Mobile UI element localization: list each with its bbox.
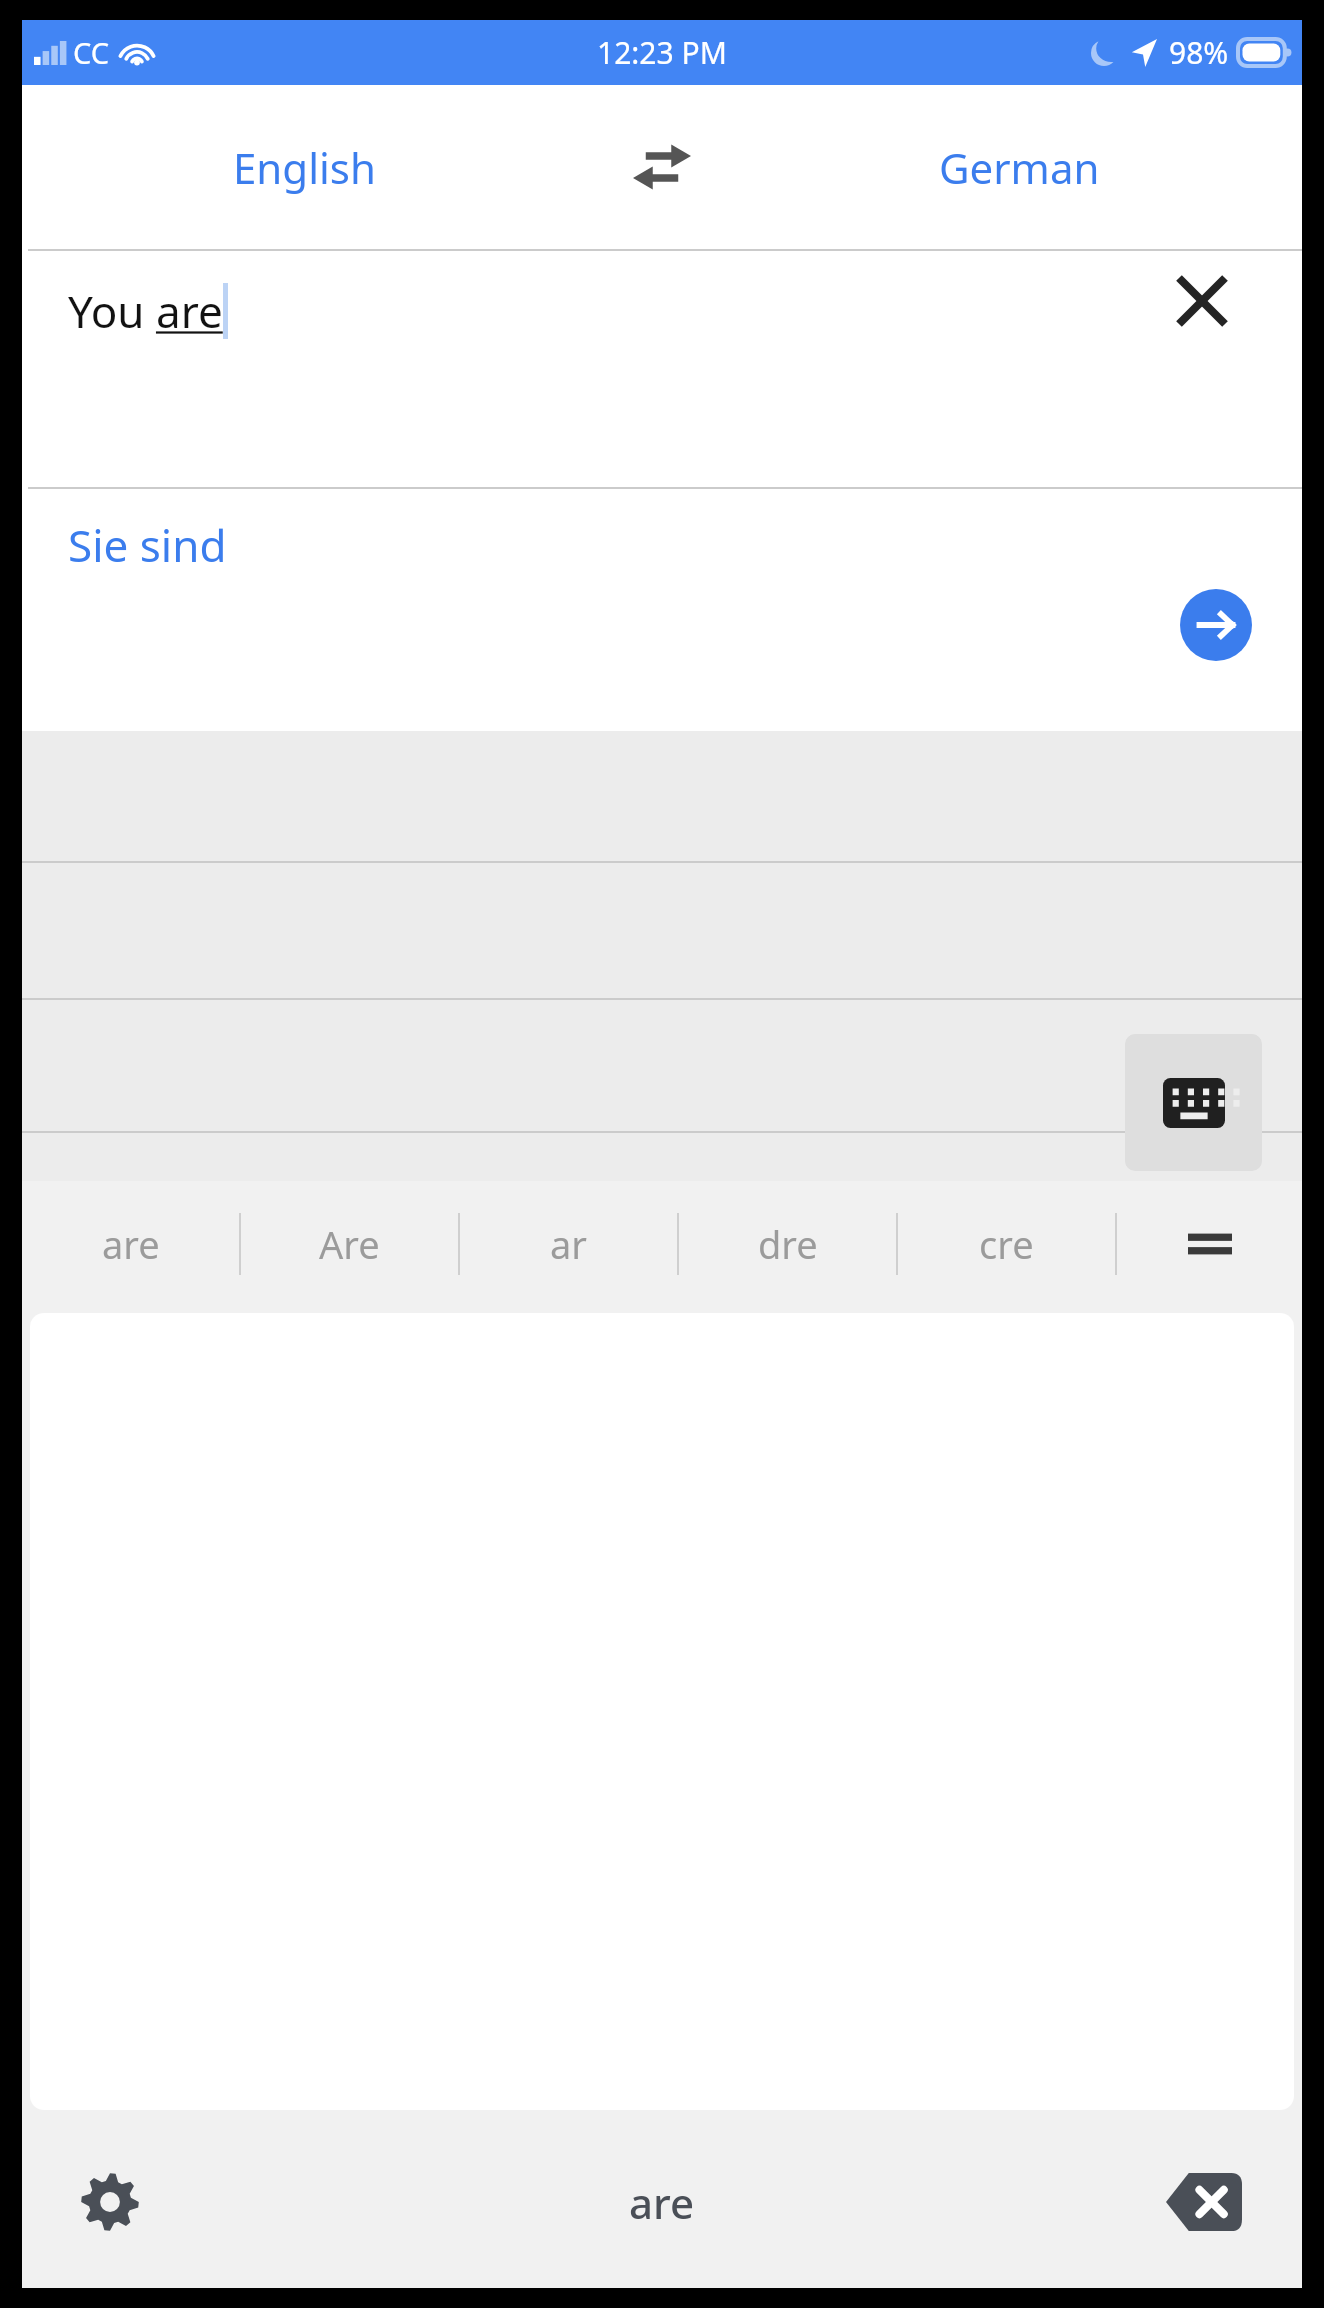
staticText: are bbox=[102, 1218, 160, 1270]
button[interactable]: German bbox=[737, 85, 1302, 249]
staticText: cre bbox=[979, 1218, 1034, 1270]
staticText: German bbox=[939, 139, 1100, 196]
button[interactable]: Show keyboard bbox=[1125, 1034, 1262, 1171]
staticText: are bbox=[629, 2174, 695, 2231]
staticText: ar bbox=[550, 1218, 588, 1270]
button[interactable]: Are bbox=[241, 1181, 458, 1307]
staticText: 98% bbox=[1169, 32, 1229, 73]
button[interactable]: More suggestions bbox=[1117, 1181, 1302, 1307]
staticText: dre bbox=[758, 1218, 818, 1270]
button[interactable]: cre bbox=[898, 1181, 1115, 1307]
button[interactable]: English bbox=[22, 85, 587, 249]
button[interactable]: Swap languages bbox=[587, 85, 737, 249]
button[interactable]: are bbox=[22, 1181, 239, 1307]
button[interactable]: dre bbox=[679, 1181, 896, 1307]
button[interactable]: Translate bbox=[1180, 589, 1252, 661]
staticText: English bbox=[233, 139, 376, 196]
staticText: CC bbox=[73, 33, 110, 72]
button[interactable]: ar bbox=[460, 1181, 677, 1307]
button[interactable]: Backspace bbox=[1156, 2154, 1252, 2250]
staticText: 12:23 PM bbox=[597, 32, 727, 73]
button[interactable]: Settings bbox=[62, 2154, 158, 2250]
staticText: Are bbox=[319, 1218, 380, 1270]
button[interactable]: Clear text bbox=[1162, 261, 1242, 341]
staticText: Sie sind bbox=[68, 515, 227, 575]
staticText: You are bbox=[68, 281, 223, 341]
